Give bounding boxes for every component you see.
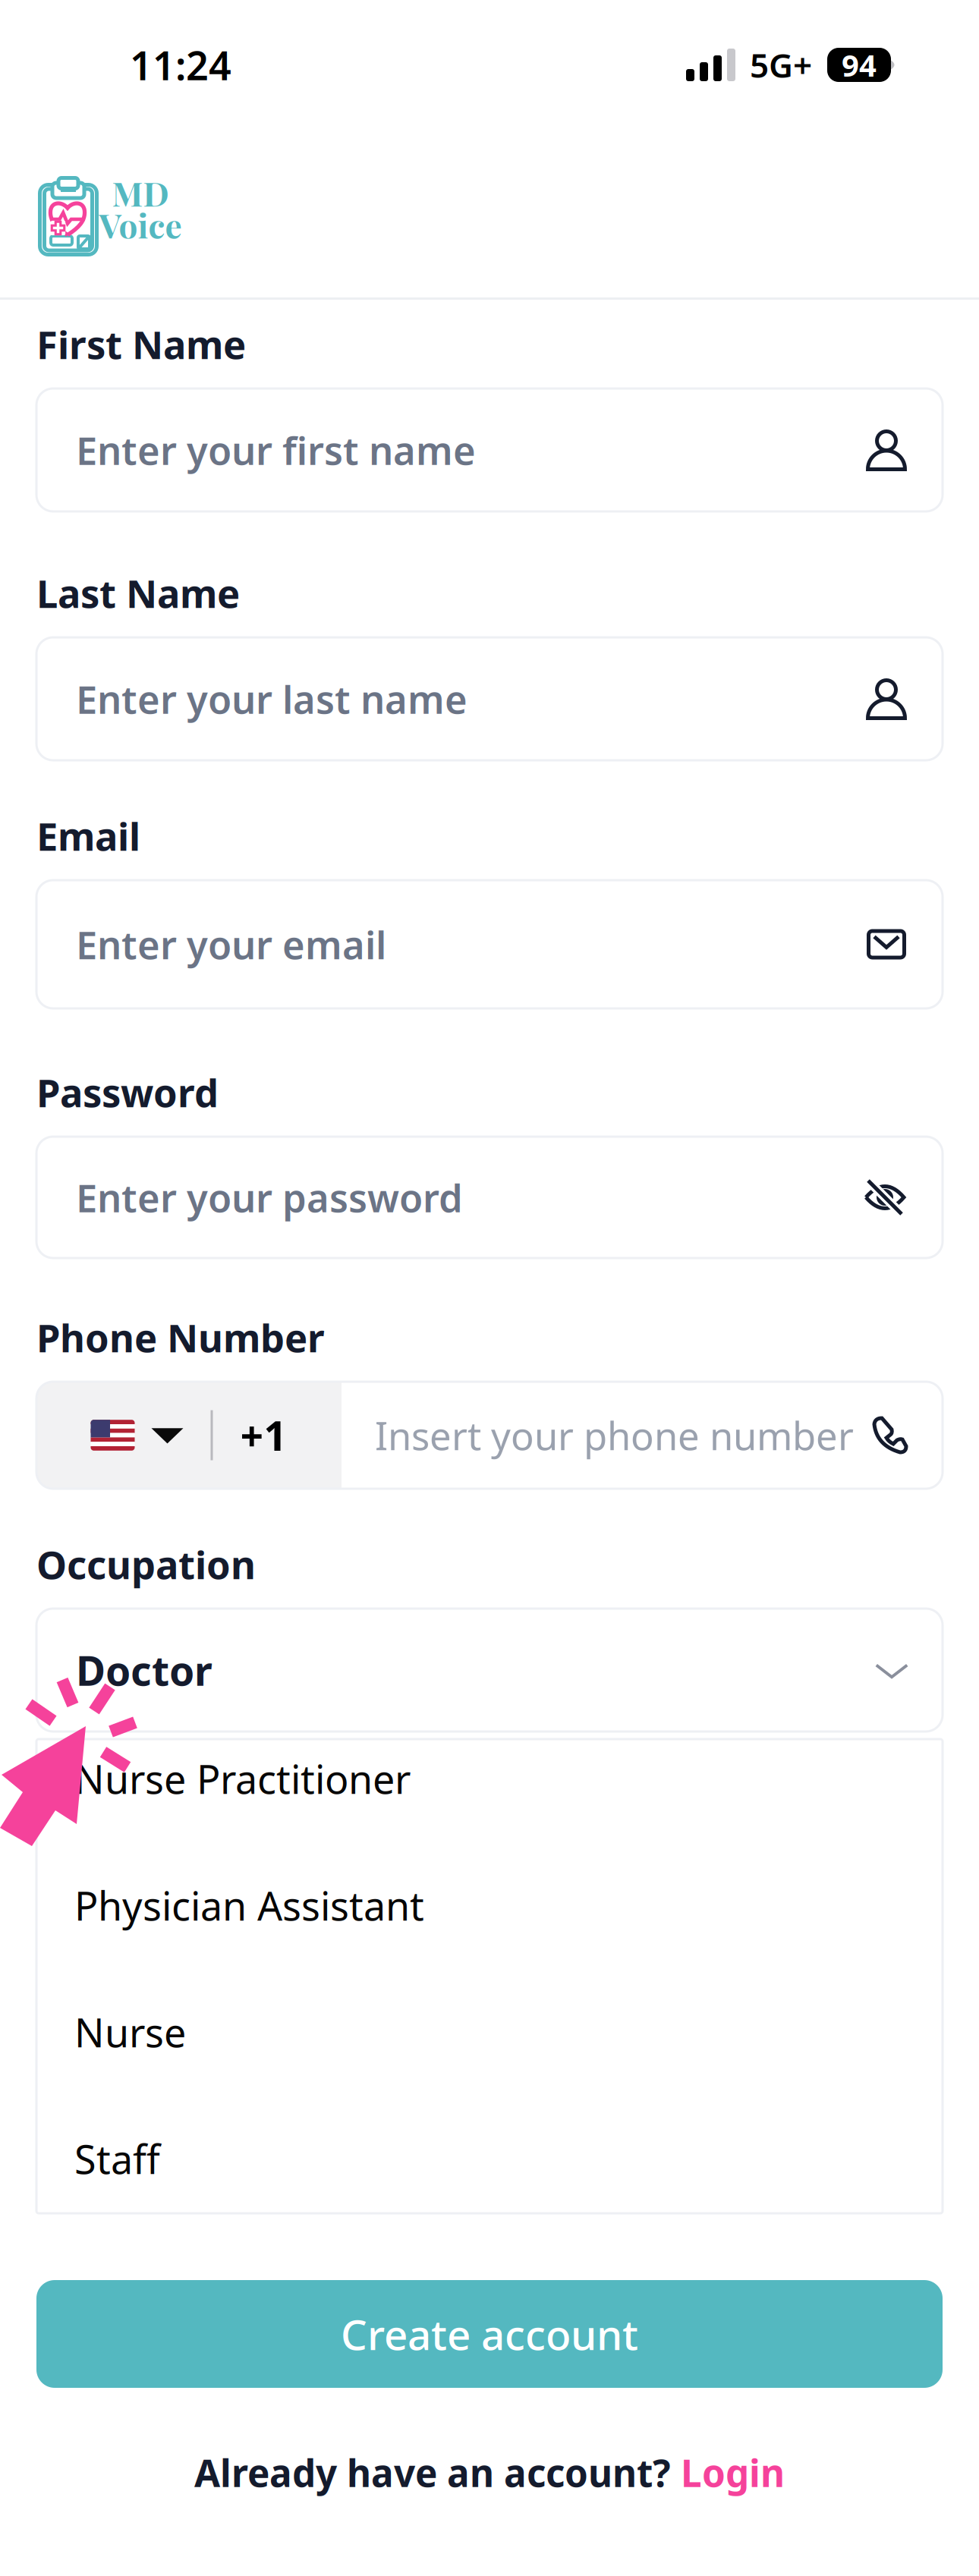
button[interactable]: Doctor [36,1609,943,1731]
staticText: Doctor [76,1643,212,1697]
staticText: Enter your password [76,1172,463,1223]
button[interactable]: Enter your last name [36,637,943,760]
button[interactable]: Create account [36,2280,943,2388]
staticText: Voice [99,202,182,247]
button[interactable]: Already have an account? [36,2448,943,2497]
staticText: Enter your email [76,919,386,970]
staticText: Nurse [74,2006,186,2058]
button[interactable]: Physician Assistant [36,1879,943,1931]
staticText: 94 [842,45,877,85]
staticText: Password [36,1067,219,1118]
staticText: Last Name [36,567,240,619]
staticText: Create account [341,2306,638,2361]
staticText: Already have an account? [194,2448,681,2497]
button[interactable]: Nurse Practitioner [36,1753,943,1804]
staticText: Phone Number [36,1312,325,1363]
staticText: MD [112,170,169,215]
staticText: First Name [36,319,246,370]
staticText: Staff [74,2133,160,2185]
staticText: 5G+ [750,43,812,87]
staticText: 11:24 [130,39,231,91]
button[interactable]: Staff [36,2133,943,2184]
staticText: Insert your phone number [375,1410,854,1461]
button[interactable]: Nurse [36,2006,943,2058]
staticText: Enter your last name [76,673,467,724]
staticText: Physician Assistant [74,1879,424,1932]
staticText: Login [681,2448,785,2497]
button[interactable]: Enter your first name [36,388,943,511]
button[interactable]: +1 [36,1382,342,1489]
staticText: Occupation [36,1539,256,1590]
staticText: Email [36,810,140,861]
button[interactable]: Enter your email [36,880,943,1008]
staticText: +1 [240,1408,287,1462]
button[interactable]: Enter your password [36,1137,943,1258]
staticText: Nurse Practitioner [74,1752,411,1805]
staticText: Enter your first name [76,424,476,476]
